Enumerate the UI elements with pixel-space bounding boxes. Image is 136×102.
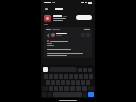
button[interactable]: Keyboard switch (43, 67, 48, 72)
button[interactable] (44, 7, 49, 11)
button[interactable]: Send (88, 92, 94, 97)
button[interactable] (54, 7, 64, 11)
button[interactable]: Back (46, 33, 50, 37)
button[interactable]: Follow (76, 15, 92, 20)
button[interactable]: Follow (41, 13, 95, 24)
button[interactable] (49, 67, 77, 72)
button[interactable]: Back (44, 27, 92, 58)
